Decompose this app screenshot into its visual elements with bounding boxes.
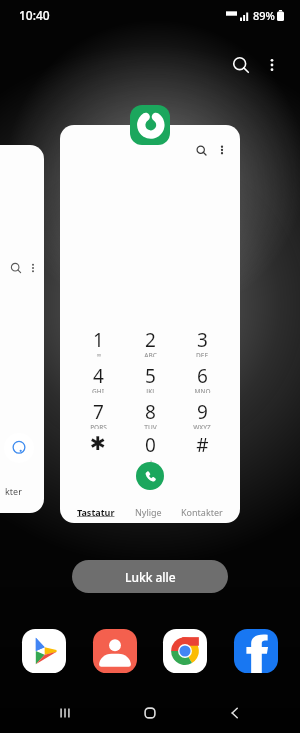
staticText: ∞ [96, 351, 102, 357]
staticText: 1 [93, 327, 104, 353]
button[interactable]: 9 [176, 399, 228, 431]
staticText: ABC [144, 351, 157, 357]
staticText: Lukk alle [125, 569, 176, 585]
button[interactable]: Facebook [234, 629, 278, 673]
button[interactable]: 6 [176, 363, 228, 395]
button[interactable]: More options [214, 142, 230, 158]
staticText: 3 [197, 327, 208, 353]
button[interactable]: 5 [124, 363, 176, 395]
staticText: DEF [196, 351, 208, 357]
staticText: 6 [197, 363, 208, 389]
button[interactable]: Phone app icon [130, 105, 170, 145]
button[interactable]: Search contacts [193, 142, 209, 158]
button[interactable]: 0 [124, 432, 176, 464]
staticText: Nylige [135, 506, 162, 518]
staticText: Kontakter [181, 506, 223, 518]
staticText: 89% [253, 8, 275, 23]
staticText: PQRS [90, 423, 107, 429]
staticText: Tastatur [77, 506, 115, 518]
button[interactable]: Back [215, 693, 255, 733]
button[interactable]: Search [226, 50, 256, 80]
staticText: kter [5, 485, 22, 497]
staticText: TUV [144, 423, 157, 429]
button[interactable]: 8 [124, 399, 176, 431]
button[interactable]: Messages recent task [0, 145, 44, 513]
staticText: ✱ [90, 432, 106, 454]
button[interactable]: Call [136, 462, 164, 490]
button[interactable]: # [176, 432, 228, 464]
button[interactable]: Play Store [22, 629, 66, 673]
button[interactable]: More options [258, 51, 286, 79]
staticText: 10:40 [19, 7, 50, 23]
button[interactable]: 2 [124, 327, 176, 359]
button[interactable]: Tastatur [75, 504, 117, 520]
button[interactable]: Kontakter [179, 504, 225, 520]
staticText: 5 [145, 363, 156, 389]
button[interactable]: Chrome [163, 629, 207, 673]
button[interactable]: 4 [72, 363, 124, 395]
staticText: 7 [93, 399, 104, 425]
button[interactable]: Home [130, 693, 170, 733]
button[interactable]: Phone recent task [60, 125, 240, 523]
button[interactable]: Nylige [133, 504, 164, 520]
staticText: + [148, 456, 154, 462]
staticText: MNO [194, 387, 211, 393]
staticText: 4 [93, 363, 104, 389]
staticText: 0 [145, 432, 156, 458]
button[interactable]: 7 [72, 399, 124, 431]
staticText: 9 [197, 399, 208, 425]
button[interactable]: 3 [176, 327, 228, 359]
staticText: WXYZ [193, 423, 211, 429]
staticText: JKL [146, 387, 156, 393]
staticText: 8 [145, 399, 156, 425]
button[interactable]: 1 [72, 327, 124, 359]
staticText: # [196, 432, 209, 458]
button[interactable]: Lukk alle [72, 560, 228, 593]
button[interactable]: Recents [45, 693, 85, 733]
button[interactable]: Contacts [93, 629, 137, 673]
staticText: 2 [145, 327, 156, 353]
button[interactable]: ✱ [72, 432, 124, 464]
staticText: GHI [92, 387, 104, 393]
